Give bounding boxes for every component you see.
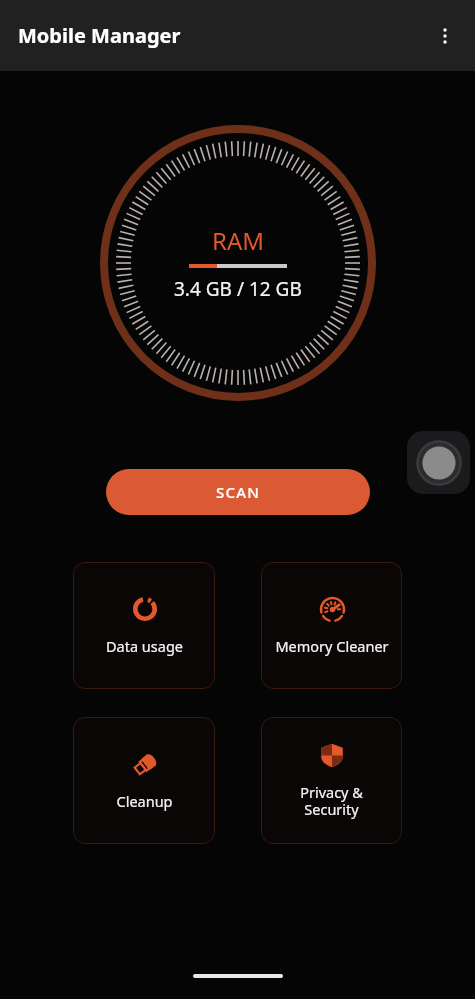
staticText: Data usage xyxy=(106,636,183,656)
button[interactable]: SCAN xyxy=(106,469,370,515)
button[interactable]: Memory Cleaner xyxy=(261,562,402,689)
button[interactable]: Data usage xyxy=(73,562,215,689)
staticText: SCAN xyxy=(216,482,261,502)
button[interactable]: Cleanup xyxy=(73,717,215,844)
staticText: Mobile Manager xyxy=(18,22,181,49)
button[interactable]: Floating shortcut xyxy=(407,431,470,494)
staticText: Cleanup xyxy=(116,791,173,811)
button[interactable]: More options xyxy=(421,12,469,60)
staticText: RAM xyxy=(212,224,265,257)
staticText: 3.4 GB / 12 GB xyxy=(174,276,302,302)
staticText: Memory Cleaner xyxy=(275,636,389,656)
button[interactable]: Privacy & Security xyxy=(261,717,402,844)
staticText: Privacy & Security xyxy=(300,782,363,819)
